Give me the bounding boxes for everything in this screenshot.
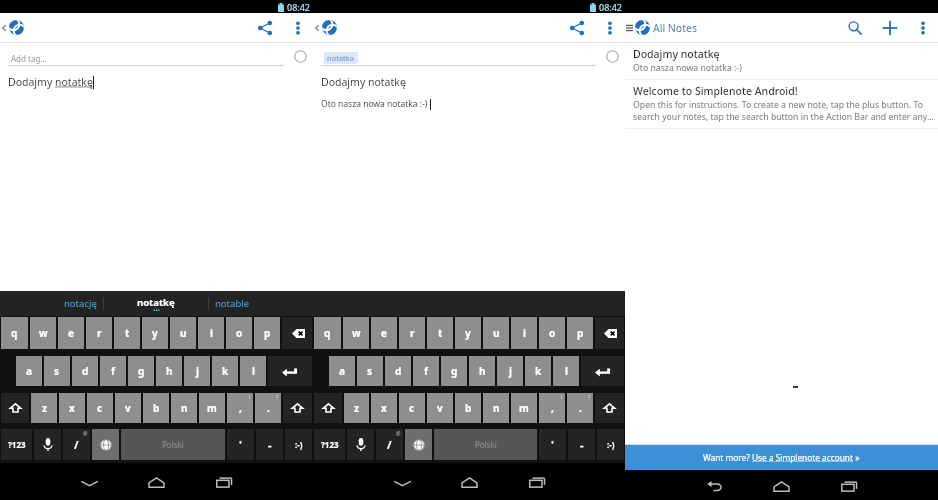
button[interactable]: i [198,317,224,349]
button[interactable]: Emoticon [285,429,312,460]
button[interactable]: s [357,356,383,386]
button[interactable]: . [255,393,281,423]
button[interactable]: Polski [434,429,537,460]
button[interactable]: Apostrophe [539,429,566,460]
button[interactable]: Recent apps [190,463,257,500]
button[interactable]: d [72,356,98,386]
button[interactable]: h [469,356,495,386]
button[interactable]: Symbols [1,429,32,460]
button[interactable]: h [156,356,182,386]
button[interactable]: k [525,356,551,386]
button[interactable]: m [511,393,537,423]
button[interactable]: u [483,317,509,349]
button[interactable]: More options [283,13,313,42]
button[interactable]: g [128,356,154,386]
button[interactable]: . [567,393,593,423]
button[interactable]: Change language [92,429,119,460]
button[interactable]: Share [247,13,283,42]
button[interactable]: y [455,317,481,349]
button[interactable]: Backspace [595,317,624,349]
button[interactable]: Navigate up [313,13,338,42]
button[interactable]: w [343,317,369,349]
button[interactable]: Recent apps [815,470,882,500]
button[interactable]: j [497,356,523,386]
button[interactable]: Recent apps [503,463,570,500]
button[interactable]: n [483,393,509,423]
button[interactable]: d [385,356,411,386]
button[interactable]: Voice input [347,429,374,460]
button[interactable]: Pin note [294,50,307,63]
button[interactable]: Polski [121,429,225,460]
button[interactable]: Dodajmy notatkę [625,43,938,79]
button[interactable]: b [143,393,169,423]
button[interactable]: Search [837,13,872,42]
button[interactable]: , [227,393,253,423]
button[interactable]: w [30,317,56,349]
button[interactable]: u [170,317,196,349]
button[interactable]: x [371,393,397,423]
button[interactable]: Hyphen [568,429,595,460]
button[interactable]: Voice input [34,429,61,460]
button[interactable]: notację [0,291,103,316]
button[interactable]: y [142,317,168,349]
button[interactable]: Back [56,463,123,500]
button[interactable]: v [115,393,141,423]
button[interactable]: Share [559,13,595,42]
button[interactable]: r [399,317,425,349]
button[interactable]: Home [123,463,190,500]
button[interactable]: i [511,317,537,349]
button[interactable]: Pin note [606,50,619,63]
button[interactable]: Slash [376,429,403,460]
button[interactable]: Shift [314,393,342,423]
button[interactable]: Home [748,470,815,500]
button[interactable]: Shift [595,393,624,423]
button[interactable]: Navigate up [0,13,25,42]
button[interactable]: l [553,356,579,386]
button[interactable]: notable [209,291,313,316]
button[interactable]: l [240,356,266,386]
button[interactable]: Welcome to Simplenote Android! [625,80,938,128]
button[interactable]: Emoticon [597,429,624,460]
button[interactable]: Enter [581,356,624,386]
button[interactable]: Enter [268,356,312,386]
button[interactable]: , [539,393,565,423]
button[interactable]: x [59,393,85,423]
button[interactable]: c [399,393,425,423]
button[interactable]: New note [872,13,907,42]
button[interactable]: n [171,393,197,423]
button[interactable]: q [1,317,28,349]
button[interactable]: p [254,317,280,349]
button[interactable]: More options [907,13,938,42]
button[interactable]: j [184,356,210,386]
button[interactable]: e [58,317,84,349]
button[interactable]: Shift [283,393,312,423]
button[interactable]: g [441,356,467,386]
button[interactable]: Back [681,470,748,500]
button[interactable]: Home [436,463,503,500]
button[interactable]: Apostrophe [227,429,254,460]
button[interactable]: m [199,393,225,423]
button[interactable]: a [329,356,355,386]
button[interactable]: Change language [405,429,432,460]
button[interactable]: r [86,317,112,349]
button[interactable]: t [427,317,453,349]
button[interactable]: f [100,356,126,386]
button[interactable]: z [31,393,57,423]
button[interactable]: z [344,393,369,423]
button[interactable]: e [371,317,397,349]
button[interactable]: Symbols [314,429,345,460]
button[interactable]: Want more? [625,445,938,470]
button[interactable]: s [44,356,70,386]
button[interactable]: Open navigation drawer [625,13,697,42]
button[interactable]: v [427,393,453,423]
button[interactable]: o [539,317,565,349]
button[interactable]: f [413,356,439,386]
button[interactable]: q [314,317,341,349]
button[interactable]: o [226,317,252,349]
button[interactable]: Shift [1,393,29,423]
button[interactable]: notatkę [104,291,208,316]
button[interactable]: b [455,393,481,423]
button[interactable]: Slash [63,429,90,460]
button[interactable]: More options [595,13,625,42]
button[interactable]: a [16,356,42,386]
